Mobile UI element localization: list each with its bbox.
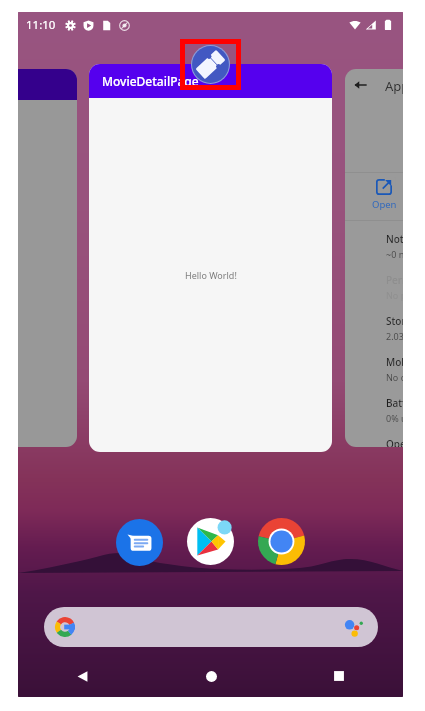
staticText: Permissions — [386, 273, 403, 287]
button[interactable]: Open by default — [386, 437, 403, 447]
staticText: Open by default — [386, 437, 403, 447]
staticText: Mobile data & Wi‑Fi — [386, 355, 403, 369]
staticText: No permissions granted — [386, 289, 403, 301]
button[interactable]: MovieDetailPage — [89, 64, 332, 452]
button[interactable]: Messages — [116, 519, 163, 566]
staticText: Open — [372, 198, 397, 211]
staticText: 0% use since last full charge — [386, 412, 403, 424]
button[interactable]: Open — [359, 179, 403, 217]
button[interactable] — [18, 69, 77, 447]
button[interactable]: App icon — [180, 39, 241, 90]
button[interactable]: Back — [345, 69, 403, 447]
button[interactable]: Play Store — [187, 518, 234, 565]
button[interactable]: Mobile data & Wi‑Fi — [386, 355, 403, 389]
button[interactable]: Recents — [275, 655, 403, 697]
staticText: No data used — [386, 371, 403, 383]
staticText: MovieDetailPage — [102, 73, 199, 89]
staticText: Storage & cache — [386, 314, 403, 328]
staticText: Hello World! — [185, 269, 237, 281]
staticText: ~0 notifications per week — [386, 248, 403, 260]
button[interactable]: Notifications — [386, 232, 403, 266]
staticText: 11:10 — [26, 17, 56, 33]
staticText: App info — [385, 77, 403, 95]
button[interactable]: Back — [18, 655, 147, 697]
button[interactable]: Home — [147, 655, 275, 697]
button[interactable]: Permissions — [386, 273, 403, 307]
button[interactable]: Back — [354, 79, 366, 91]
button[interactable]: Chrome — [258, 518, 305, 565]
staticText: 2.03 MB used in internal — [386, 330, 403, 342]
button[interactable]: Search — [44, 607, 378, 647]
staticText: Notifications — [386, 232, 403, 246]
staticText: Battery — [386, 396, 403, 410]
button[interactable]: Storage & cache — [386, 314, 403, 348]
button[interactable]: Battery — [386, 396, 403, 430]
